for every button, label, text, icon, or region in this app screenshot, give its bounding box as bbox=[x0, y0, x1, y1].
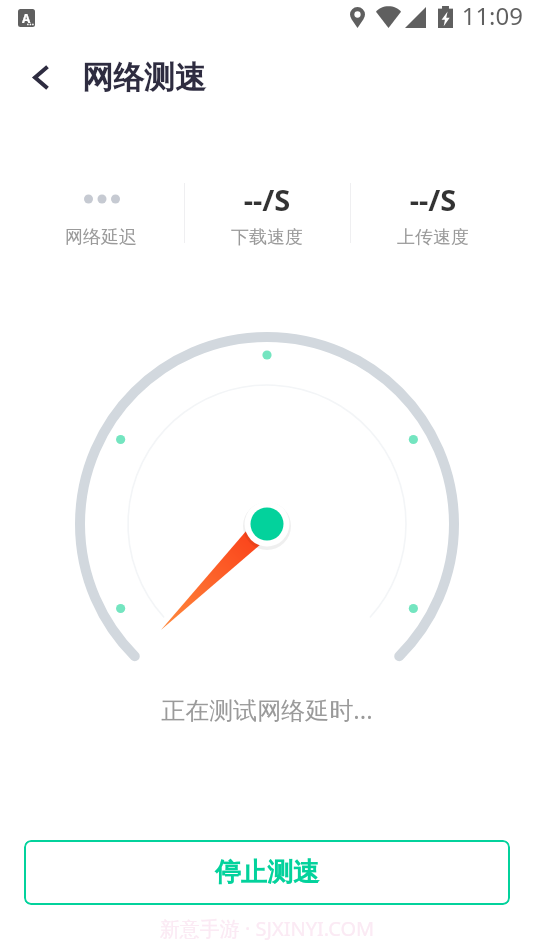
staticText: 正在测试网络延时... bbox=[0, 693, 534, 726]
button[interactable]: Back bbox=[19, 56, 61, 98]
staticText: 上传速度 bbox=[333, 226, 533, 249]
staticText: 停止测速 bbox=[215, 856, 319, 889]
button[interactable]: 停止测速 bbox=[24, 840, 510, 905]
staticText: --/S bbox=[167, 180, 367, 219]
staticText: --/S bbox=[333, 180, 533, 219]
staticText: A bbox=[22, 10, 31, 26]
staticText: 11:09 bbox=[323, 0, 523, 32]
staticText: 下载速度 bbox=[167, 226, 367, 249]
staticText: 网络延迟 bbox=[1, 226, 201, 249]
staticText: 网络测速 bbox=[82, 58, 206, 97]
staticText: 新意手游 · SJXINYI.COM bbox=[0, 915, 534, 942]
